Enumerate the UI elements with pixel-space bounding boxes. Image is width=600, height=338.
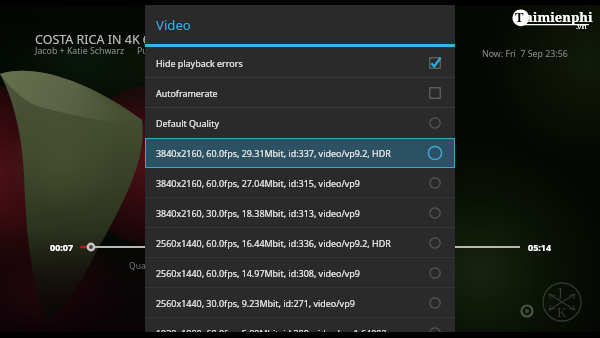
button[interactable]: 3840x2160, 60.0fps, 27.04Mbit, id:315, v… xyxy=(145,168,455,198)
button[interactable]: 3840x2160, 30.0fps, 18.38Mbit, id:313, v… xyxy=(145,198,455,228)
staticText: 3840x2160, 60.0fps, 27.04Mbit, id:315, v… xyxy=(156,177,427,189)
button[interactable]: Hide playback errors xyxy=(145,48,455,78)
button[interactable]: 2560x1440, 30.0fps, 9.23Mbit, id:271, vi… xyxy=(145,288,455,318)
staticText: 2560x1440, 60.0fps, 16.44Mbit, id:336, v… xyxy=(156,237,427,249)
staticText: Video xyxy=(156,16,191,34)
staticText: COSTA RICA IN 4K 6 xyxy=(35,31,151,48)
staticText: J xyxy=(558,283,563,301)
staticText: Now: Fri 7 Sep 23:56 xyxy=(482,48,568,60)
button[interactable]: 2560x1440, 60.0fps, 16.44Mbit, id:336, v… xyxy=(145,228,455,258)
staticText: 3840x2160, 60.0fps, 29.31Mbit, id:337, v… xyxy=(156,147,427,159)
staticText: 05:14 xyxy=(528,241,552,253)
button[interactable]: Autoframerate xyxy=(145,78,455,108)
staticText: Pu xyxy=(137,45,148,57)
staticText: Qual xyxy=(129,260,148,272)
button[interactable]: Default Quality xyxy=(145,108,455,138)
staticText: .vn xyxy=(576,21,587,31)
button[interactable]: 3840x2160, 60.0fps, 29.31Mbit, id:337, v… xyxy=(145,138,455,168)
staticText: 3840x2160, 30.0fps, 18.38Mbit, id:313, v… xyxy=(156,207,427,219)
staticText: Jacob + Katie Schwarz xyxy=(35,45,125,57)
staticText: 2560x1440, 30.0fps, 9.23Mbit, id:271, vi… xyxy=(156,297,427,309)
staticText: 2560x1440, 60.0fps, 14.97Mbit, id:308, v… xyxy=(156,267,427,279)
staticText: Default Quality xyxy=(156,117,427,129)
button[interactable]: 2560x1440, 60.0fps, 14.97Mbit, id:308, v… xyxy=(145,258,455,288)
staticText: K xyxy=(557,303,567,321)
staticText: 1920x1080, 60.0fps, 5.89Mbit, id:299, vi… xyxy=(156,327,427,332)
staticText: Autoframerate xyxy=(156,87,427,99)
staticText: aimienphi xyxy=(525,8,593,26)
staticText: T xyxy=(515,8,524,26)
staticText: Hide playback errors xyxy=(156,57,427,69)
button[interactable]: 1920x1080, 60.0fps, 5.89Mbit, id:299, vi… xyxy=(145,318,455,332)
staticText: 00:07 xyxy=(50,241,74,253)
